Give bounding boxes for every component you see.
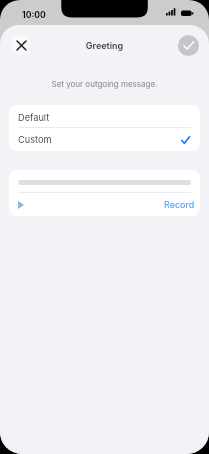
staticText: Custom <box>18 134 52 145</box>
button[interactable]: Custom <box>9 128 200 151</box>
button[interactable]: Confirm <box>178 35 199 56</box>
button[interactable]: Play <box>14 198 28 212</box>
button[interactable]: Close <box>11 35 31 55</box>
staticText: 10:00 <box>22 10 46 20</box>
button[interactable]: Default <box>9 105 200 127</box>
button[interactable]: Record <box>164 199 200 210</box>
staticText: Record <box>164 199 195 210</box>
staticText: Set your outgoing message. <box>0 79 209 89</box>
staticText: Greeting <box>0 40 209 51</box>
staticText: Default <box>18 112 50 123</box>
